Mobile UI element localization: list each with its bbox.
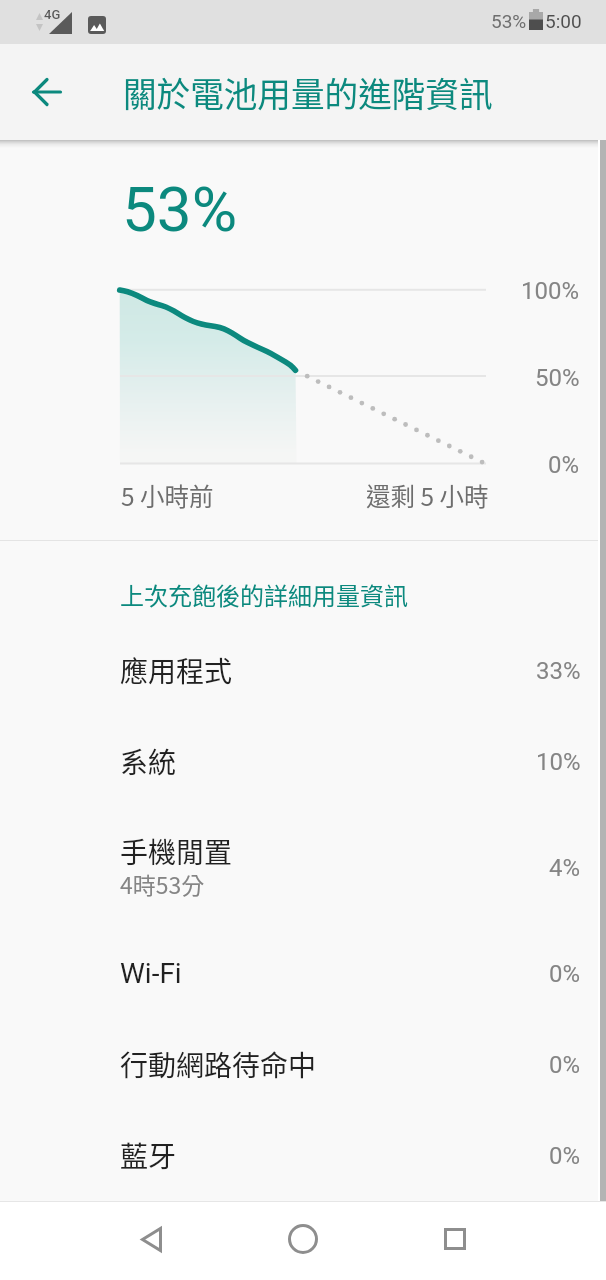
staticText: 53% <box>491 10 527 32</box>
staticText: 5 小時前 <box>121 478 214 513</box>
button[interactable]: Wi-Fi <box>0 928 606 1019</box>
staticText: 53% <box>122 173 238 246</box>
staticText: 4G <box>44 7 61 22</box>
staticText: 0% <box>549 1051 581 1079</box>
button[interactable]: 行動網路待命中 <box>0 1019 606 1110</box>
staticText: 50% <box>535 364 580 392</box>
button[interactable]: 藍牙 <box>0 1110 606 1201</box>
staticText: 5:00 <box>545 10 582 32</box>
staticText: 上次充飽後的詳細用量資訊 <box>120 577 408 612</box>
button[interactable]: 手機閒置 <box>0 807 606 928</box>
button[interactable]: Home <box>268 1204 338 1274</box>
staticText: 應用程式 <box>120 650 233 691</box>
staticText: 系統 <box>120 741 177 782</box>
staticText: 0% <box>549 1142 581 1170</box>
staticText: 手機閒置 <box>120 831 233 872</box>
button[interactable]: Back <box>116 1204 186 1274</box>
staticText: 關於電池用量的進階資訊 <box>123 68 493 117</box>
staticText: 33% <box>536 657 581 685</box>
staticText: 100% <box>521 277 580 305</box>
staticText: 0% <box>548 451 580 479</box>
staticText: 4時53分 <box>120 867 205 900</box>
button[interactable]: 應用程式 <box>0 625 606 716</box>
button[interactable]: Recent apps <box>420 1204 490 1274</box>
button[interactable]: Back <box>19 64 75 120</box>
button[interactable]: 系統 <box>0 716 606 807</box>
staticText: 行動網路待命中 <box>120 1044 317 1085</box>
staticText: 0% <box>549 960 581 988</box>
staticText: 10% <box>536 748 581 776</box>
staticText: Wi-Fi <box>120 957 182 990</box>
staticText: 還剩 5 小時 <box>366 478 489 513</box>
staticText: 藍牙 <box>120 1135 177 1176</box>
staticText: 4% <box>549 854 581 882</box>
